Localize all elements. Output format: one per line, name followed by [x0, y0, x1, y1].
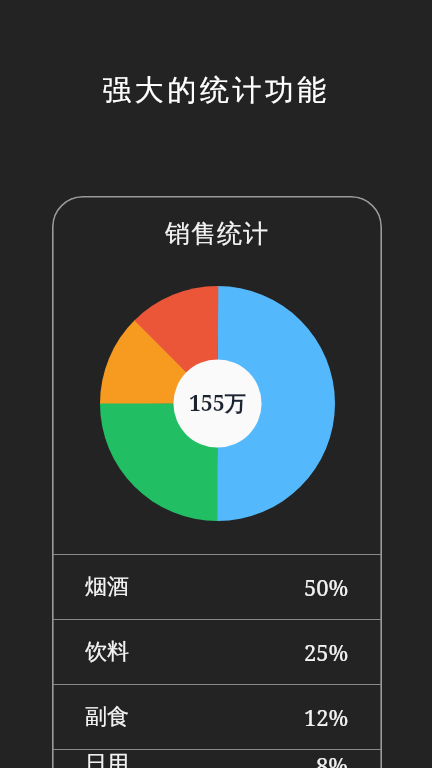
staticText: 副食	[85, 703, 129, 731]
staticText: 50%	[304, 572, 349, 602]
staticText: 25%	[304, 637, 349, 667]
staticText: 强大的统计功能	[0, 72, 432, 109]
button[interactable]: 销售统计饼图	[100, 286, 335, 521]
staticText: 日用	[85, 750, 129, 768]
staticText: 销售统计	[52, 218, 382, 249]
staticText: 烟酒	[85, 573, 129, 601]
button[interactable]: 副食	[52, 685, 382, 749]
staticText: 12%	[304, 702, 349, 732]
button[interactable]: 日用	[52, 750, 382, 768]
button[interactable]: 烟酒	[52, 555, 382, 619]
button[interactable]: 饮料	[52, 620, 382, 684]
staticText: 155万	[189, 389, 246, 418]
staticText: 8%	[316, 750, 349, 768]
staticText: 饮料	[85, 638, 129, 666]
